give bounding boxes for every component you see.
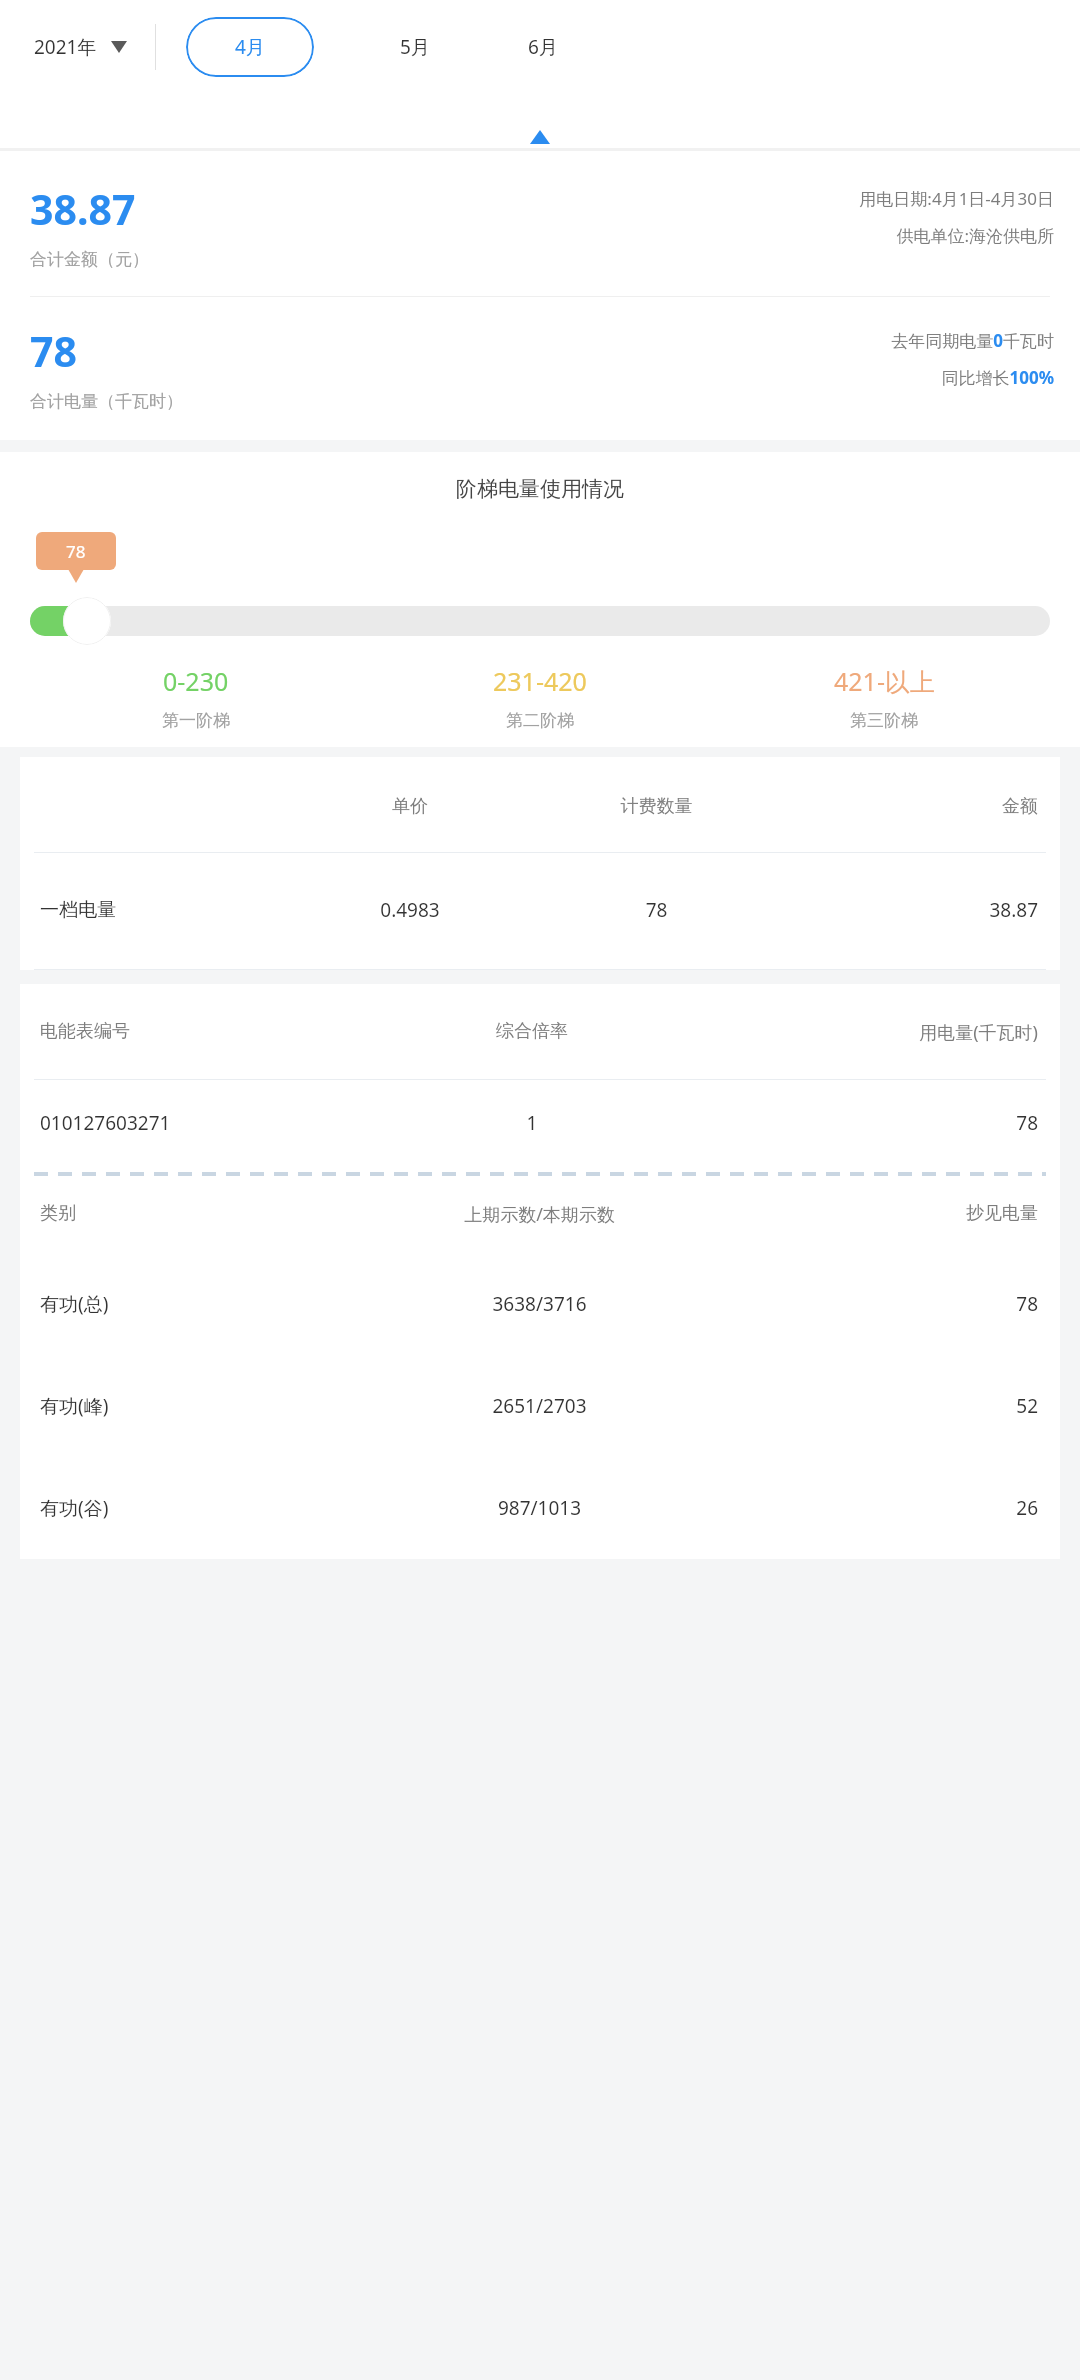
staticText: 78 bbox=[521, 897, 792, 923]
staticText: 第二阶梯 bbox=[506, 710, 574, 731]
staticText: 金额 bbox=[792, 795, 1038, 818]
staticText: 38.87 bbox=[792, 897, 1038, 923]
staticText: 计费数量 bbox=[521, 795, 792, 818]
staticText: 1 bbox=[383, 1110, 681, 1136]
staticText: 上期示数/本期示数 bbox=[343, 1202, 736, 1227]
staticText: 第一阶梯 bbox=[162, 710, 230, 731]
staticText: 78 bbox=[736, 1291, 1038, 1317]
staticText: 去年同期电量0千瓦时 bbox=[891, 329, 1054, 352]
staticText: 合计电量（千瓦时） bbox=[30, 391, 183, 412]
staticText: 用电量(千瓦时) bbox=[681, 1020, 1038, 1045]
staticText: 78 bbox=[681, 1110, 1038, 1136]
staticText: 抄见电量 bbox=[736, 1202, 1038, 1225]
staticText: 第三阶梯 bbox=[850, 710, 918, 731]
button[interactable]: 5月 bbox=[378, 12, 452, 82]
staticText: 421-以上 bbox=[834, 664, 935, 698]
staticText: 类别 bbox=[40, 1202, 343, 1225]
staticText: 78 bbox=[66, 540, 86, 563]
button[interactable]: 231-420 bbox=[368, 664, 712, 731]
staticText: 26 bbox=[736, 1495, 1038, 1521]
button[interactable]: 4月 bbox=[186, 17, 314, 77]
staticText: 电能表编号 bbox=[40, 1020, 383, 1043]
staticText: 0-230 bbox=[163, 664, 229, 698]
button[interactable]: 0-230 bbox=[24, 664, 368, 731]
staticText: 单价 bbox=[299, 795, 521, 818]
staticText: 阶梯电量使用情况 bbox=[0, 476, 1080, 502]
staticText: 一档电量 bbox=[40, 898, 299, 922]
staticText: 2651/2703 bbox=[343, 1393, 736, 1419]
staticText: 0.4983 bbox=[299, 897, 521, 923]
staticText: 987/1013 bbox=[343, 1495, 736, 1521]
staticText: 3638/3716 bbox=[343, 1291, 736, 1317]
staticText: 6月 bbox=[528, 34, 558, 60]
staticText: 有功(谷) bbox=[40, 1495, 343, 1521]
staticText: 供电单位:海沧供电所 bbox=[896, 224, 1054, 247]
staticText: 78 bbox=[30, 323, 77, 379]
staticText: 4月 bbox=[235, 34, 265, 60]
staticText: 综合倍率 bbox=[383, 1020, 681, 1043]
button[interactable]: 421-以上 bbox=[712, 664, 1056, 731]
staticText: 同比增长100% bbox=[941, 366, 1054, 389]
staticText: 010127603271 bbox=[40, 1110, 383, 1136]
button[interactable]: 用量滑块 bbox=[63, 597, 111, 645]
staticText: 合计金额（元） bbox=[30, 249, 149, 270]
staticText: 有功(总) bbox=[40, 1291, 343, 1317]
button[interactable]: 2021年 bbox=[26, 22, 135, 72]
staticText: 52 bbox=[736, 1393, 1038, 1419]
staticText: 231-420 bbox=[493, 664, 587, 698]
staticText: 38.87 bbox=[30, 181, 136, 237]
staticText: 5月 bbox=[400, 34, 430, 60]
staticText: 用电日期:4月1日-4月30日 bbox=[859, 187, 1054, 210]
button[interactable]: 6月 bbox=[506, 12, 580, 82]
staticText: 有功(峰) bbox=[40, 1393, 343, 1419]
staticText: 2021年 bbox=[34, 34, 97, 60]
